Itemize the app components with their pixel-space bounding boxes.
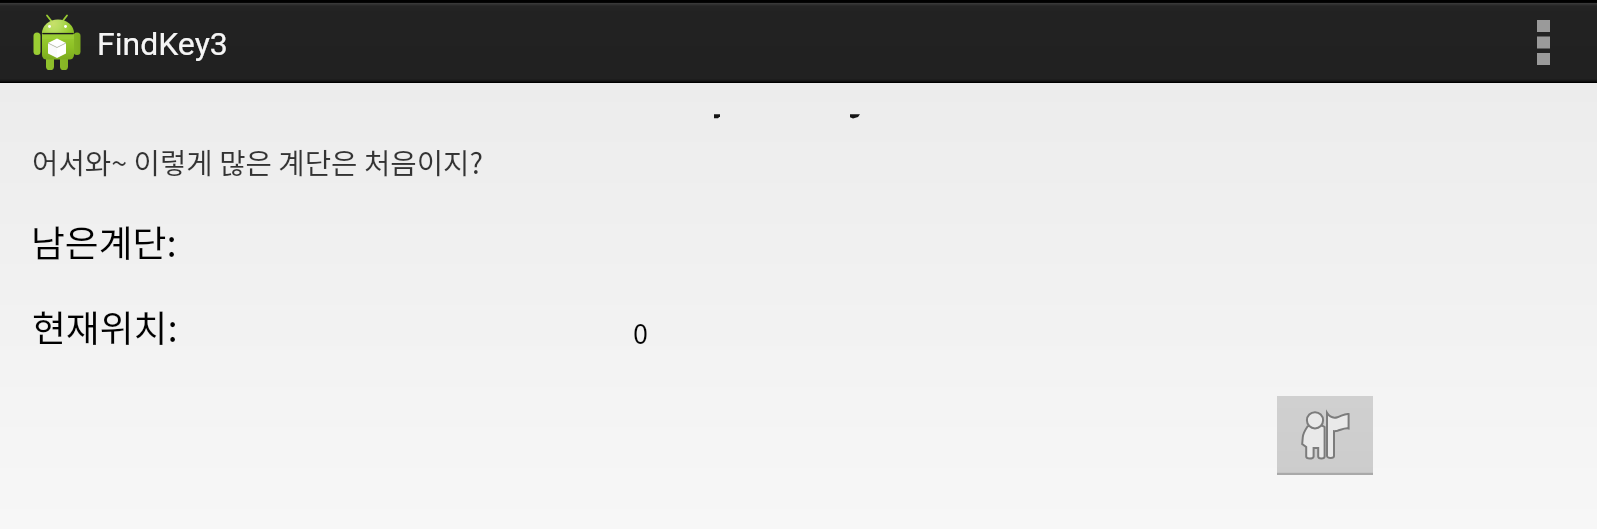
staticText: 현재위치: xyxy=(32,299,178,352)
button[interactable]: Plant flag xyxy=(1277,396,1373,475)
staticText: 0 xyxy=(633,313,648,352)
staticText: 남은계단: xyxy=(31,214,177,267)
staticText: 어서와~ 이렇게 많은 계단은 처음이지? xyxy=(32,141,484,183)
staticText: FindKey3 xyxy=(97,25,228,63)
button[interactable]: More options xyxy=(1495,0,1591,83)
